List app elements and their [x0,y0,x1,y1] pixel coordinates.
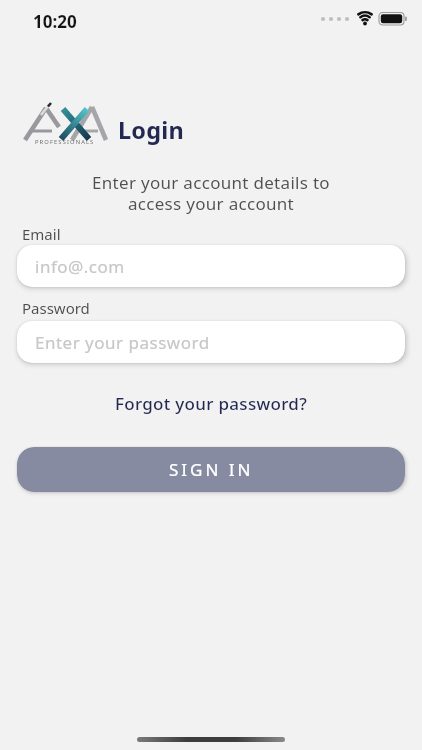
button[interactable]: Enter your password [17,321,405,363]
staticText: Password [22,298,90,318]
staticText: SIGN IN [169,458,254,481]
staticText: Login [118,114,184,146]
button[interactable]: Forgot your password? [107,390,316,417]
staticText: info@.com [35,255,125,278]
staticText: Email [22,224,61,244]
staticText: PROFESSIONALS [35,138,95,146]
button[interactable]: info@.com [17,245,405,287]
staticText: 10:20 [33,10,77,33]
staticText: Enter your account details to access you… [0,171,422,215]
button[interactable]: SIGN IN [17,447,405,492]
staticText: Enter your password [35,331,210,354]
